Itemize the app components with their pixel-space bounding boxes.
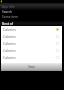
button[interactable]: Calories	[1, 47, 62, 54]
staticText: Search	[2, 10, 13, 14]
button[interactable]: Calories	[1, 33, 62, 40]
button[interactable]: Calories	[1, 40, 62, 47]
staticText: Calories	[3, 48, 16, 53]
staticText: Calories	[3, 34, 16, 39]
staticText: Calories	[3, 27, 16, 32]
staticText: Calories	[3, 55, 16, 60]
button[interactable]: Save	[1, 63, 62, 71]
staticText: Best of	[2, 21, 13, 25]
staticText: Some item	[2, 15, 19, 19]
staticText: Save	[28, 65, 35, 69]
button[interactable]: Calories	[1, 54, 62, 61]
other: Notification	[0, 0, 3, 3]
button[interactable]: Calories	[1, 26, 62, 33]
staticText: App title	[2, 5, 15, 9]
staticText: Calories	[3, 41, 16, 46]
